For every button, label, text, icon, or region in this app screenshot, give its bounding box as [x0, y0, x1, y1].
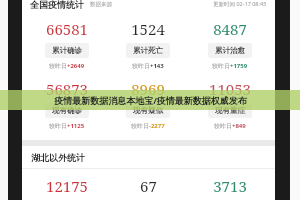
staticText: +849	[232, 122, 246, 130]
button[interactable]: 8969	[107, 79, 189, 130]
button[interactable]: 现有重症	[208, 103, 252, 118]
staticText: 较昨日	[212, 62, 230, 70]
button[interactable]: 现有确诊	[45, 103, 89, 118]
staticText: +1125	[67, 122, 85, 130]
button[interactable]: 湖北以外统计	[22, 146, 275, 168]
button[interactable]: 56873	[26, 79, 107, 130]
staticText: 67	[140, 176, 157, 196]
staticText: 疫情最新数据消息本地宝/疫情最新数据权威发布	[54, 94, 247, 106]
button[interactable]: 疫情最新数据消息本地宝/疫情最新数据权威发布	[0, 90, 300, 110]
staticText: 较昨日	[132, 62, 150, 70]
staticText: 56873	[46, 79, 88, 99]
staticText: 累计确诊	[52, 46, 82, 55]
staticText: 3713	[213, 176, 247, 196]
staticText: 8969	[131, 79, 165, 99]
staticText: 更新时间 02-17 08:45	[213, 0, 267, 8]
button[interactable]: 累计确诊	[45, 43, 89, 58]
staticText: 累计死亡	[133, 46, 163, 55]
staticText: 12175	[46, 176, 88, 196]
staticText: -2277	[149, 122, 165, 130]
button[interactable]: 8487	[189, 19, 271, 70]
staticText: 数据来源	[90, 1, 112, 8]
staticText: +1759	[230, 62, 248, 70]
staticText: 全国疫情统计	[30, 0, 84, 9]
staticText: 累计治愈	[215, 46, 245, 55]
button[interactable]: 现有疑似	[126, 103, 170, 118]
button[interactable]: 1524	[107, 19, 189, 70]
button[interactable]: 11053	[189, 79, 271, 130]
staticText: 66581	[46, 19, 88, 39]
button[interactable]: 66581	[26, 19, 107, 70]
staticText: 1524	[131, 19, 165, 39]
staticText: 现有重症	[215, 106, 245, 115]
staticText: 较昨日	[131, 122, 149, 130]
staticText: 较昨日	[49, 122, 67, 130]
staticText: 8487	[213, 19, 247, 39]
staticText: 现有疑似	[133, 106, 163, 115]
staticText: 较昨日	[49, 62, 67, 70]
button[interactable]: 累计治愈	[208, 43, 252, 58]
button[interactable]: 累计死亡	[126, 43, 170, 58]
staticText: 湖北以外统计	[31, 152, 85, 163]
staticText: +2649	[67, 62, 85, 70]
staticText: 现有确诊	[52, 106, 82, 115]
staticText: 较昨日	[214, 122, 232, 130]
staticText: 11053	[209, 79, 251, 99]
staticText: +143	[150, 62, 164, 70]
button[interactable]: 全国疫情统计	[22, 0, 275, 10]
